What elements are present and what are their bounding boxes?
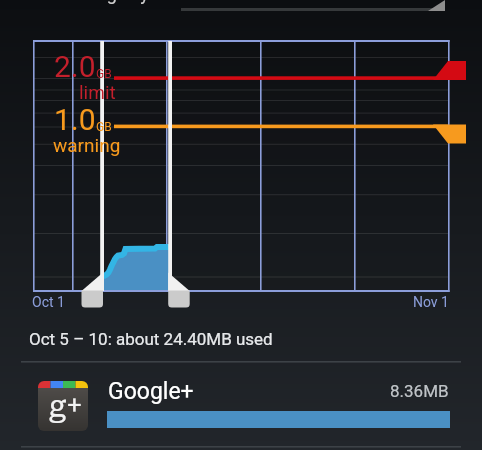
button[interactable]: 2.0: [54, 49, 112, 84]
staticText: warning: [53, 134, 121, 156]
staticText: Oct 5 – 10: about 24.40MB used: [29, 329, 273, 349]
staticText: 2.0: [54, 49, 96, 84]
staticText: Oct 1: [32, 294, 65, 310]
staticText: 1.0: [54, 102, 96, 137]
button[interactable]: Data usage cycle: [0, 0, 482, 15]
staticText: GB: [96, 67, 112, 81]
staticText: GB: [96, 120, 112, 134]
staticText: limit: [79, 81, 116, 103]
staticText: g+: [49, 388, 83, 423]
staticText: Nov 1: [413, 294, 449, 310]
staticText: 8.36MB: [390, 381, 449, 401]
staticText: Data usage cycle: [36, 0, 173, 4]
button[interactable]: g+: [0, 362, 482, 446]
button[interactable]: 1.0: [54, 102, 112, 137]
staticText: Google+: [108, 378, 194, 405]
